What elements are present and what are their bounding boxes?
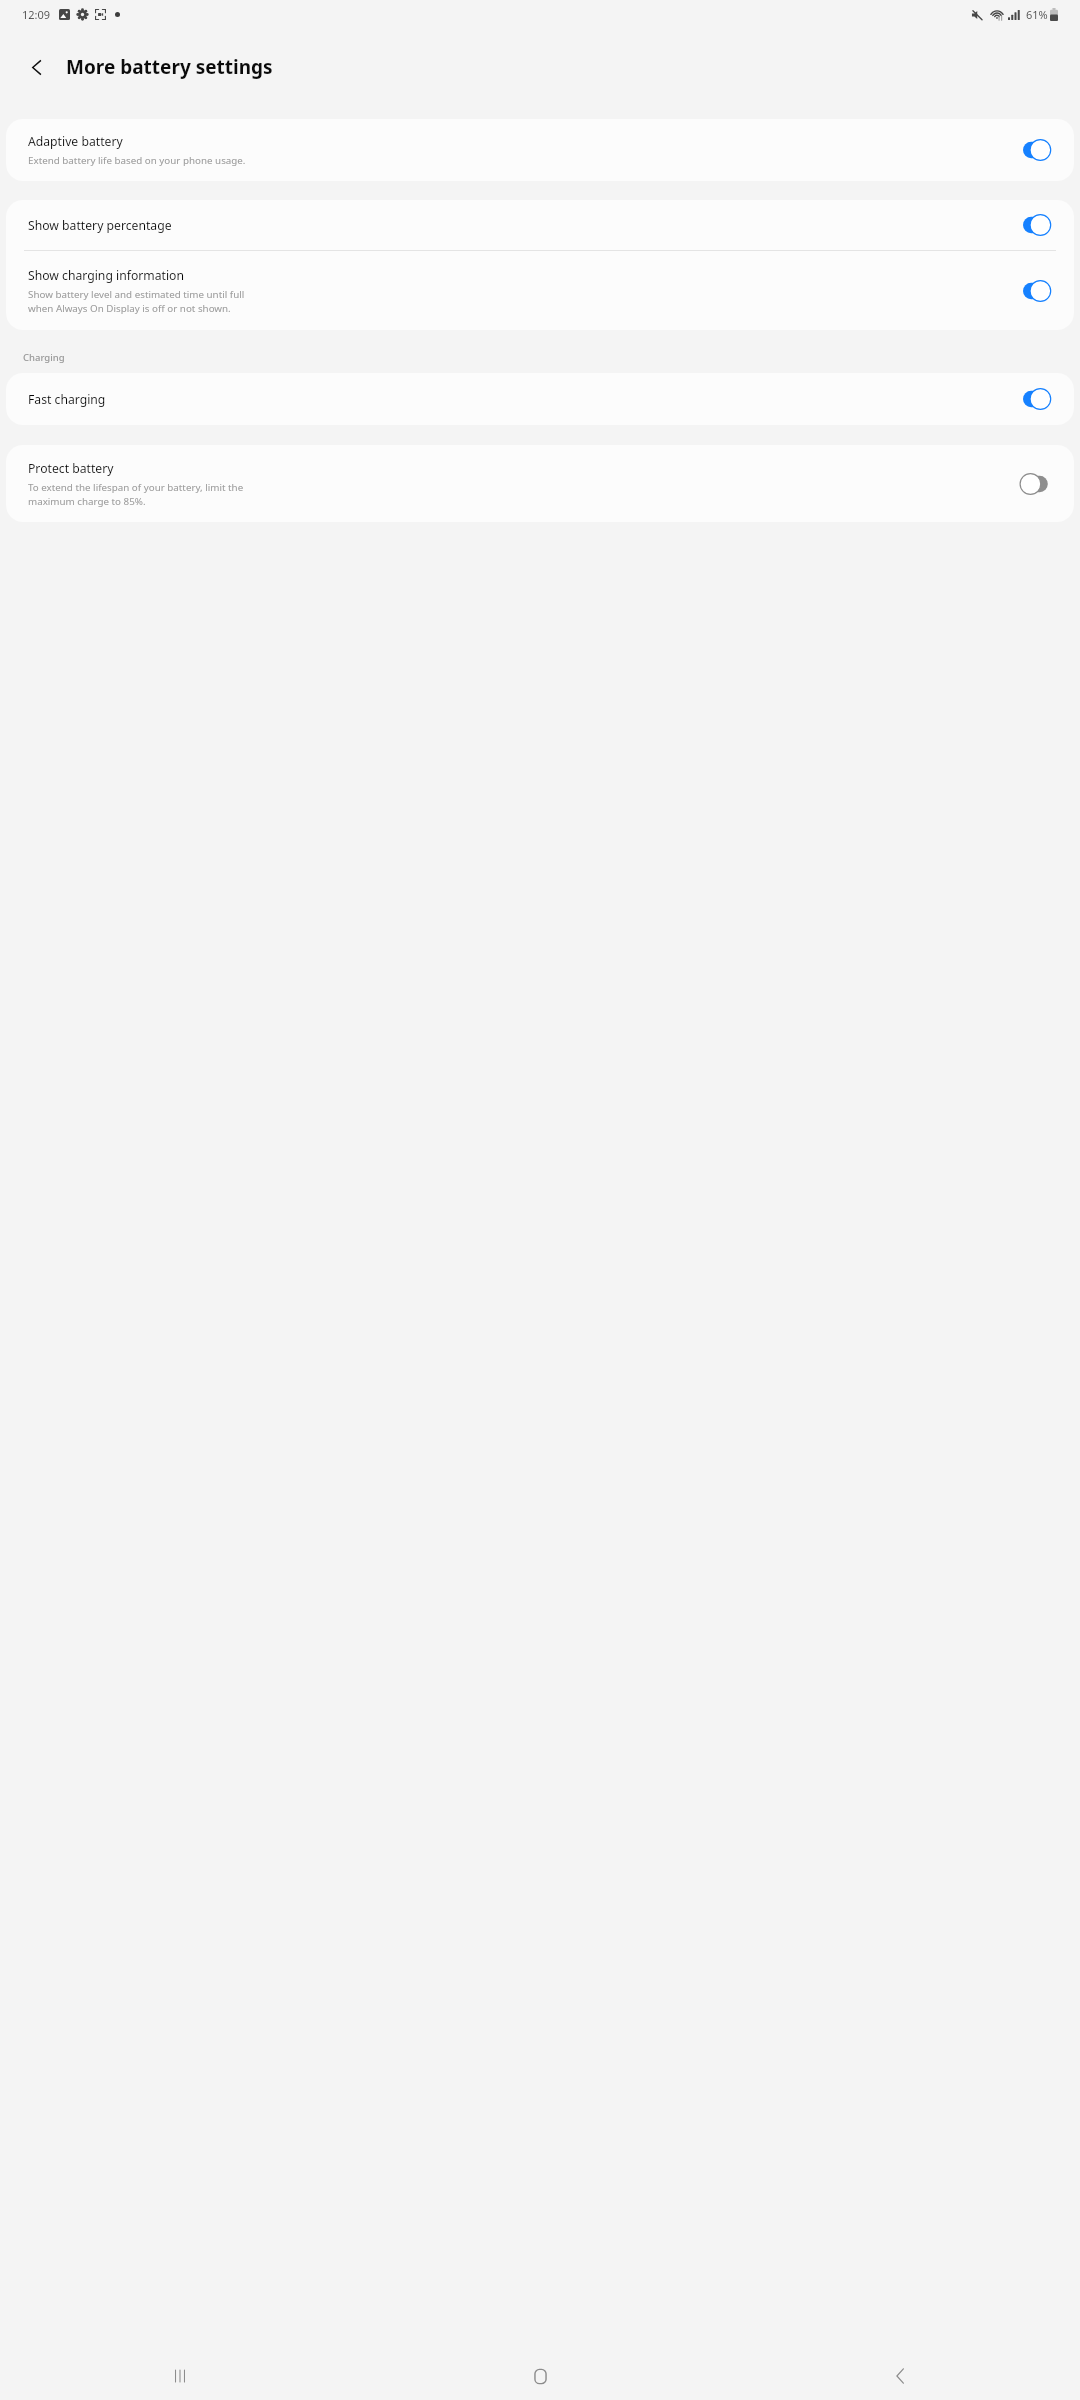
button[interactable]: Protect battery	[6, 445, 1074, 522]
button[interactable]: On	[1023, 280, 1054, 302]
staticText: Charging	[23, 351, 65, 364]
button[interactable]: Show battery percentage	[6, 200, 1074, 250]
staticText: To extend the lifespan of your battery, …	[28, 481, 244, 507]
button[interactable]: On	[1023, 139, 1054, 161]
staticText: Adaptive battery	[28, 133, 123, 150]
staticText: Extend battery life based on your phone …	[28, 154, 246, 167]
button[interactable]: Adaptive battery	[6, 119, 1074, 181]
staticText: Protect battery	[28, 460, 114, 477]
button[interactable]: Fast charging	[6, 373, 1074, 425]
button[interactable]: Back	[17, 47, 57, 87]
button[interactable]: Back	[720, 2352, 1080, 2400]
staticText: More battery settings	[66, 54, 273, 80]
staticText: Show battery level and estimated time un…	[28, 288, 245, 314]
staticText: 61%	[1026, 7, 1048, 22]
staticText: Fast charging	[28, 391, 106, 408]
button[interactable]: Recent apps	[0, 2352, 360, 2400]
button[interactable]: Show charging information	[6, 251, 1074, 330]
staticText: Show battery percentage	[28, 217, 172, 234]
button[interactable]: On	[1023, 214, 1054, 236]
staticText: Show charging information	[28, 267, 185, 284]
staticText: 12:09	[22, 7, 51, 22]
button[interactable]: Home	[360, 2352, 720, 2400]
button[interactable]: On	[1023, 388, 1054, 410]
button[interactable]: Off	[1023, 473, 1054, 495]
